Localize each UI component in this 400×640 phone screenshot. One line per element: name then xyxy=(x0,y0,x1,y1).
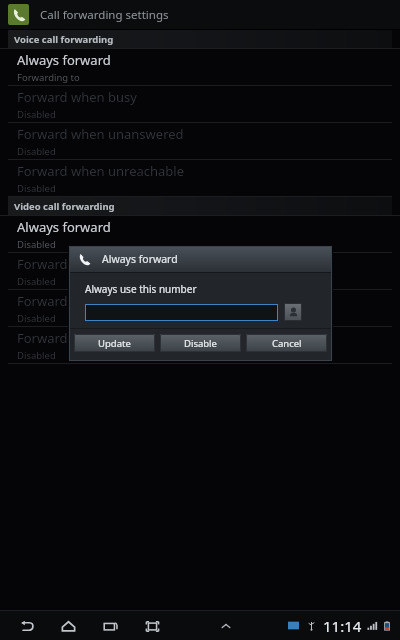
staticText: 11:14 xyxy=(323,616,362,636)
button[interactable]: Always forward xyxy=(0,49,400,85)
button[interactable]: Back xyxy=(14,614,38,638)
staticText: Disabled xyxy=(17,312,56,325)
staticText: Call forwarding settings xyxy=(40,7,169,23)
staticText: Disabled xyxy=(17,145,56,158)
staticText: Disable xyxy=(184,337,217,350)
staticText: Forward when unanswered xyxy=(17,125,184,143)
staticText: Update xyxy=(98,337,131,350)
button[interactable]: Forward when busy xyxy=(0,86,400,122)
button[interactable]: Notifications xyxy=(218,618,234,634)
staticText: Always forward xyxy=(17,51,111,69)
staticText: Forward when busy xyxy=(17,255,137,273)
staticText: Always forward xyxy=(17,218,111,236)
staticText: Forward when unreachable xyxy=(17,329,185,347)
staticText: Always use this number xyxy=(85,282,197,296)
button[interactable] xyxy=(85,304,278,321)
button[interactable]: Always forward xyxy=(0,216,400,252)
staticText: Disabled xyxy=(17,349,56,362)
button[interactable]: Forward when unreachable xyxy=(0,327,400,363)
staticText: Always forward xyxy=(102,252,178,266)
other: Phone app icon xyxy=(8,4,29,25)
button[interactable]: Screenshot xyxy=(140,614,164,638)
staticText: Cancel xyxy=(272,337,302,350)
staticText: Voice call forwarding xyxy=(14,33,114,46)
button[interactable]: Forward when busy xyxy=(0,253,400,289)
staticText: Disabled xyxy=(17,238,56,251)
button[interactable]: Disable xyxy=(160,334,241,352)
staticText: Forward when unreachable xyxy=(17,162,185,180)
button[interactable]: Forward when unreachable xyxy=(0,160,400,196)
button[interactable]: Cancel xyxy=(246,334,327,352)
button[interactable]: Home xyxy=(56,614,80,638)
button[interactable]: Recent apps xyxy=(98,614,122,638)
staticText: Forwarding to xyxy=(17,71,80,84)
staticText: Forward when unanswered xyxy=(17,292,184,310)
button[interactable]: Forward when unanswered xyxy=(0,123,400,159)
staticText: Video call forwarding xyxy=(14,200,115,213)
staticText: Forward when busy xyxy=(17,88,137,106)
staticText: Disabled xyxy=(17,108,56,121)
button[interactable]: Forward when unanswered xyxy=(0,290,400,326)
staticText: Disabled xyxy=(17,275,56,288)
staticText: Disabled xyxy=(17,182,56,195)
button[interactable]: Update xyxy=(74,334,155,352)
button[interactable]: Pick contact xyxy=(284,303,302,321)
